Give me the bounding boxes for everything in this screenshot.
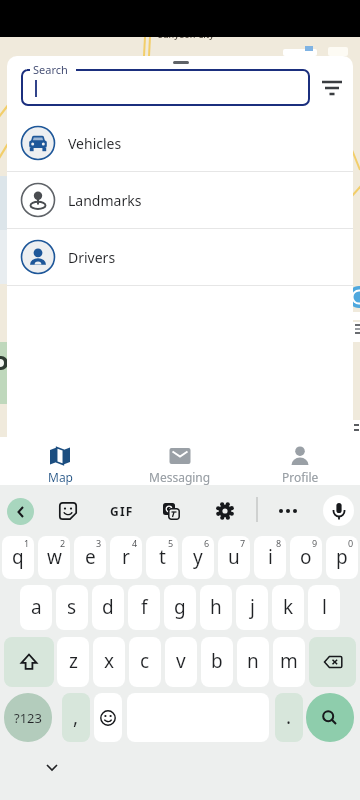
button[interactable]: v xyxy=(165,637,197,687)
staticText: . xyxy=(286,704,292,730)
button[interactable]: Vehicles xyxy=(7,115,353,171)
staticText: p xyxy=(336,544,348,570)
button[interactable]: p xyxy=(326,536,358,579)
staticText: 5 xyxy=(168,537,174,549)
button[interactable]: e xyxy=(74,536,106,579)
button[interactable]: k xyxy=(272,585,304,630)
staticText: GIF xyxy=(110,503,134,519)
button[interactable]: s xyxy=(56,585,88,630)
button[interactable]: , xyxy=(62,693,90,742)
staticText: o xyxy=(300,544,312,570)
button[interactable]: Search xyxy=(21,69,310,106)
staticText: w xyxy=(47,544,62,570)
staticText: i xyxy=(268,544,273,570)
staticText: g xyxy=(174,594,186,620)
staticText: ?123 xyxy=(14,709,42,727)
button[interactable]: z xyxy=(57,637,89,687)
staticText: y xyxy=(193,544,203,570)
button[interactable]: n xyxy=(237,637,269,687)
button[interactable]: Messaging xyxy=(120,437,240,485)
staticText: a xyxy=(31,594,42,620)
staticText: l xyxy=(322,594,327,620)
button[interactable]: y xyxy=(182,536,214,579)
button[interactable]: ?123 xyxy=(4,693,52,742)
button[interactable] xyxy=(94,693,122,742)
staticText: b xyxy=(211,648,223,674)
staticText: c xyxy=(140,648,150,674)
button[interactable]: c xyxy=(129,637,161,687)
staticText: 4 xyxy=(132,537,138,549)
staticText: j xyxy=(250,594,255,620)
staticText: 7 xyxy=(240,537,246,549)
button[interactable]: f xyxy=(128,585,160,630)
button[interactable] xyxy=(212,498,238,524)
button[interactable] xyxy=(309,637,356,687)
button[interactable] xyxy=(306,693,354,742)
staticText: u xyxy=(228,544,240,570)
button[interactable]: m xyxy=(273,637,305,687)
staticText: 2 xyxy=(60,537,66,549)
button[interactable]: Landmarks xyxy=(7,172,353,228)
staticText: x xyxy=(104,648,115,674)
button[interactable]: w xyxy=(38,536,70,579)
staticText: f xyxy=(141,594,148,620)
button[interactable] xyxy=(323,495,354,526)
button[interactable] xyxy=(55,498,81,524)
staticText: 8 xyxy=(276,537,282,549)
staticText: , xyxy=(73,704,79,730)
staticText: d xyxy=(102,594,114,620)
staticText: h xyxy=(210,594,222,620)
button[interactable]: t xyxy=(146,536,178,579)
staticText: r xyxy=(122,544,130,570)
staticText: z xyxy=(69,648,78,674)
button[interactable]: l xyxy=(308,585,340,630)
button[interactable]: d xyxy=(92,585,124,630)
staticText: n xyxy=(247,648,259,674)
button[interactable]: GIF xyxy=(106,498,138,524)
staticText: 1 xyxy=(24,537,30,549)
button[interactable]: a xyxy=(20,585,52,630)
staticText: s xyxy=(67,594,77,620)
button[interactable] xyxy=(158,498,184,524)
staticText: Search xyxy=(33,62,68,77)
button[interactable]: h xyxy=(200,585,232,630)
button[interactable]: . xyxy=(275,693,303,742)
staticText: e xyxy=(85,544,96,570)
staticText: Messaging xyxy=(149,469,211,485)
button[interactable]: q xyxy=(2,536,34,579)
staticText: 0 xyxy=(348,537,354,549)
button[interactable]: x xyxy=(93,637,125,687)
staticText: Landmarks xyxy=(68,191,142,210)
staticText: q xyxy=(12,544,24,570)
button[interactable]: g xyxy=(164,585,196,630)
staticText: m xyxy=(280,648,298,674)
button[interactable]: r xyxy=(110,536,142,579)
button[interactable] xyxy=(4,637,54,687)
button[interactable] xyxy=(315,72,349,102)
staticText: Profile xyxy=(282,469,319,485)
button[interactable]: i xyxy=(254,536,286,579)
button[interactable]: Profile xyxy=(240,437,360,485)
button[interactable]: u xyxy=(218,536,250,579)
staticText: 3 xyxy=(96,537,102,549)
staticText: v xyxy=(176,648,186,674)
button[interactable]: Map xyxy=(0,437,120,485)
staticText: Drivers xyxy=(68,248,116,267)
button[interactable]: j xyxy=(236,585,268,630)
button[interactable] xyxy=(7,498,34,525)
staticText: Vehicles xyxy=(68,134,122,153)
staticText: Map xyxy=(48,469,73,485)
staticText: Suhyeon City xyxy=(158,28,214,40)
staticText: 6 xyxy=(204,537,210,549)
button[interactable]: Drivers xyxy=(7,229,353,285)
button[interactable] xyxy=(275,498,301,524)
staticText: 9 xyxy=(312,537,318,549)
button[interactable]: b xyxy=(201,637,233,687)
button[interactable]: o xyxy=(290,536,322,579)
staticText: t xyxy=(159,544,166,570)
staticText: k xyxy=(283,594,294,620)
